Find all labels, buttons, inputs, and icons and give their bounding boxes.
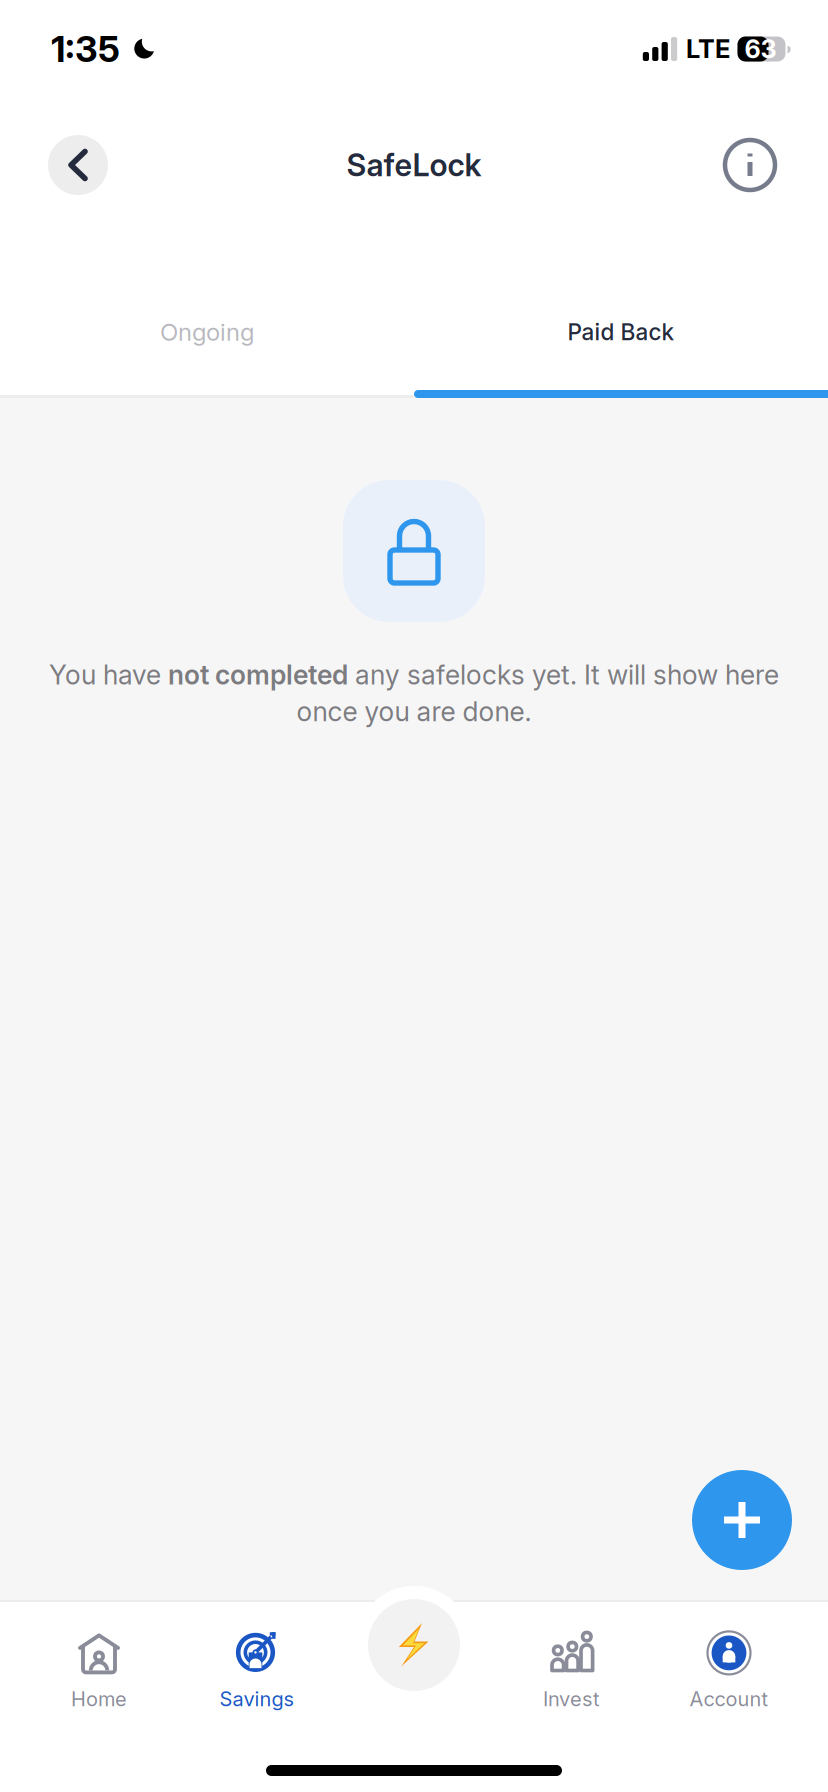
button[interactable]: Add SafeLock [692, 1470, 792, 1570]
button[interactable]: Account [650, 1617, 808, 1725]
button[interactable]: Savings [178, 1617, 335, 1725]
staticText: Paid Back [567, 318, 674, 346]
staticText: Savings [219, 1687, 293, 1711]
staticText: LTE [686, 34, 730, 64]
staticText: SafeLock [346, 146, 481, 183]
staticText: 63 [744, 34, 776, 64]
staticText: 1:35 [51, 27, 120, 71]
staticText: once you are done. [296, 695, 531, 728]
button[interactable]: Information [725, 140, 775, 190]
staticText: Invest [543, 1687, 600, 1711]
staticText: Account [689, 1687, 768, 1711]
staticText: You have not completed any safelocks yet… [49, 659, 779, 690]
button[interactable]: Back [48, 135, 108, 195]
button[interactable]: Paid Back [414, 274, 828, 390]
button[interactable]: Invest [493, 1617, 650, 1725]
staticText: Home [71, 1687, 127, 1711]
button[interactable]: Quick actions [355, 1586, 473, 1704]
button[interactable]: Home [20, 1617, 178, 1725]
button[interactable]: Ongoing [0, 274, 414, 390]
staticText: Ongoing [160, 317, 254, 346]
